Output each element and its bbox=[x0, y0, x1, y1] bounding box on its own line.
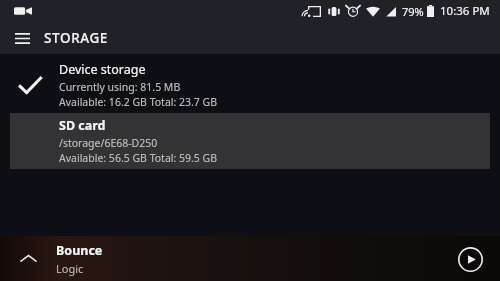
staticText: /storage/6E68-D250 bbox=[59, 136, 158, 150]
staticText: Logic bbox=[56, 261, 84, 276]
staticText: STORAGE bbox=[44, 29, 108, 47]
staticText: 10:36 PM bbox=[440, 3, 490, 19]
button[interactable]: SD card bbox=[10, 113, 490, 169]
button[interactable]: Open navigation drawer bbox=[6, 22, 38, 54]
button[interactable]: Expand player bbox=[0, 236, 500, 281]
staticText: Available: 16.2 GB Total: 23.7 GB bbox=[59, 95, 218, 109]
staticText: Available: 56.5 GB Total: 59.5 GB bbox=[59, 151, 218, 165]
staticText: 79% bbox=[402, 4, 424, 19]
staticText: Device storage bbox=[59, 61, 146, 78]
staticText: Currently using: 81.5 MB bbox=[59, 80, 181, 94]
staticText: SD card bbox=[59, 117, 106, 134]
button[interactable]: Device storage bbox=[0, 57, 500, 113]
button[interactable]: Play bbox=[452, 241, 488, 277]
staticText: Bounce bbox=[56, 242, 103, 259]
button[interactable]: Expand player bbox=[0, 236, 56, 281]
